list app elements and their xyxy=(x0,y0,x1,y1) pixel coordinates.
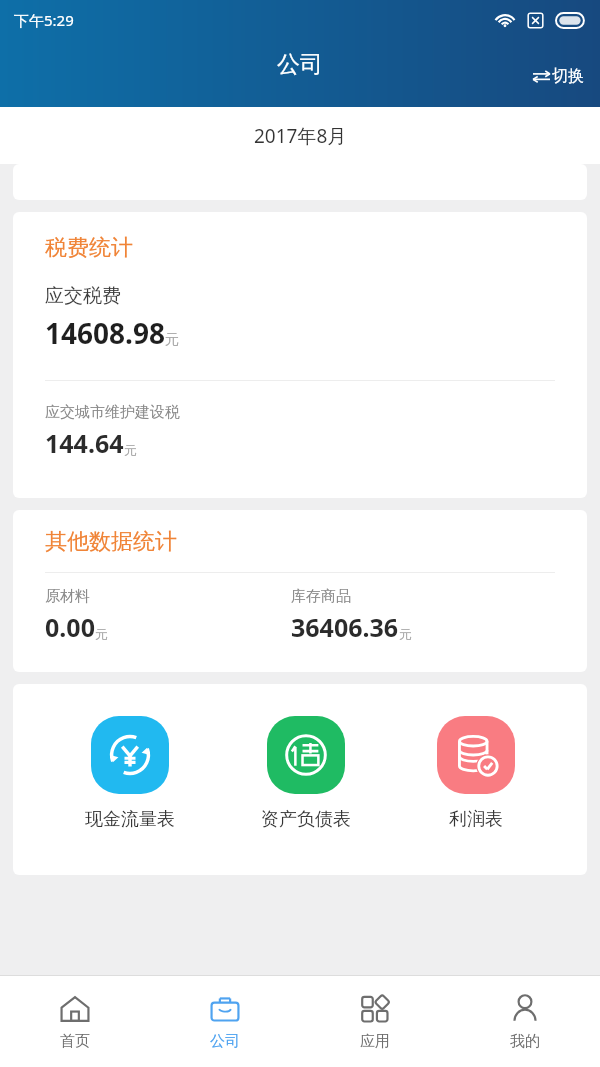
staticText: 元 xyxy=(124,442,137,458)
staticText: 利润表 xyxy=(449,808,503,831)
button[interactable]: 应用 xyxy=(300,976,450,1067)
staticText: 下午5:29 xyxy=(14,10,74,30)
staticText: 其他数据统计 xyxy=(45,528,177,556)
staticText: 公司 xyxy=(277,50,323,79)
staticText: 元 xyxy=(165,331,179,349)
staticText: 库存商品 xyxy=(291,587,351,606)
staticText: 原材料 xyxy=(45,587,90,606)
button[interactable]: 资产负债表 xyxy=(247,716,365,831)
staticText: 现金流量表 xyxy=(85,808,175,831)
staticText: 资产负债表 xyxy=(261,808,351,831)
staticText: 144.64 xyxy=(45,426,124,460)
button[interactable]: 切换 xyxy=(527,62,590,90)
staticText: 切换 xyxy=(552,66,584,86)
button[interactable]: 现金流量表 xyxy=(71,716,189,831)
staticText: 14608.98 xyxy=(45,314,165,352)
staticText: 税费统计 xyxy=(45,234,133,262)
staticText: 公司 xyxy=(210,1032,240,1051)
button[interactable]: 利润表 xyxy=(423,716,529,831)
staticText: 36406.36 xyxy=(291,610,399,644)
staticText: 应用 xyxy=(360,1032,390,1051)
staticText: 应交税费 xyxy=(45,284,121,308)
staticText: 2017年8月 xyxy=(254,123,347,149)
button[interactable]: 首页 xyxy=(0,976,150,1067)
staticText: 元 xyxy=(95,626,108,642)
button[interactable]: 我的 xyxy=(450,976,600,1067)
staticText: 首页 xyxy=(60,1032,90,1051)
staticText: 应交城市维护建设税 xyxy=(45,403,180,422)
staticText: 元 xyxy=(399,626,412,642)
staticText: 0.00 xyxy=(45,610,95,644)
staticText: 我的 xyxy=(510,1032,540,1051)
button[interactable]: 公司 xyxy=(150,976,300,1067)
